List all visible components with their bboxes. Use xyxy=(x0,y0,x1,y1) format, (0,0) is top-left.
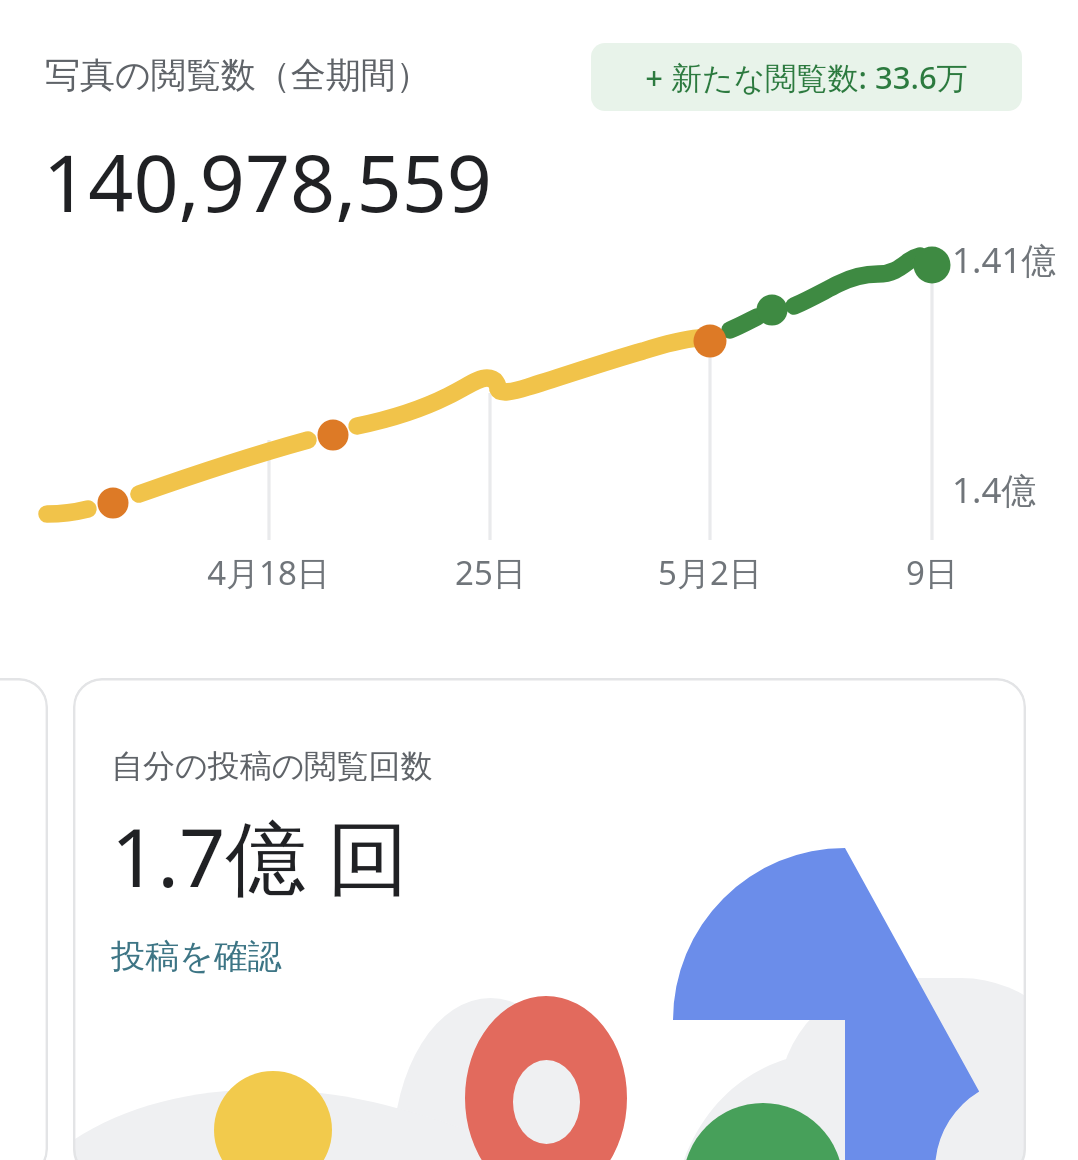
button[interactable]: 自分の投稿の閲覧回数 xyxy=(73,678,1026,1160)
staticText: + 新たな閲覧数: 33.6万 xyxy=(645,56,968,98)
staticText: 25日 xyxy=(455,550,526,595)
button[interactable] xyxy=(0,678,48,1160)
staticText: 1.41億 xyxy=(952,236,1057,284)
staticText: 4月18日 xyxy=(207,550,330,595)
staticText: 自分の投稿の閲覧回数 xyxy=(111,746,433,786)
staticText: 写真の閲覧数（全期間） xyxy=(45,53,431,97)
staticText: 140,978,559 xyxy=(43,128,493,236)
staticText: 1.7億 回 xyxy=(111,800,409,911)
staticText: 5月2日 xyxy=(658,550,762,595)
staticText: 1.4億 xyxy=(952,466,1037,514)
staticText: 9日 xyxy=(906,550,958,595)
button[interactable]: 投稿を確認 xyxy=(111,935,282,978)
staticText: 投稿を確認 xyxy=(111,935,282,978)
button[interactable]: + 新たな閲覧数: 33.6万 xyxy=(591,43,1022,111)
